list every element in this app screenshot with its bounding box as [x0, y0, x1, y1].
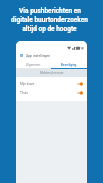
other: Toggle Mijn buurt: [77, 82, 83, 86]
staticText: Meld mij hierover: [40, 71, 64, 75]
staticText: Algemeen: [26, 63, 41, 67]
button[interactable]: Beveiliging: [51, 60, 87, 69]
staticText: Via pushberichten en: [19, 7, 81, 15]
staticText: App instellingen: [26, 54, 51, 58]
staticText: Thuis: [20, 91, 28, 95]
staticText: Mijn buurt: [20, 82, 35, 86]
button[interactable]: Thuis: [16, 88, 87, 97]
staticText: digitale buurtonderzoeken: [11, 16, 88, 24]
staticText: Beveiliging: [61, 63, 77, 67]
other: Toggle Thuis: [77, 91, 83, 95]
button[interactable]: Menu: [16, 51, 87, 60]
button[interactable]: Mijn buurt: [16, 79, 87, 88]
button[interactable]: Algemeen: [16, 60, 51, 69]
staticText: altijd op de hoogte: [22, 25, 77, 33]
